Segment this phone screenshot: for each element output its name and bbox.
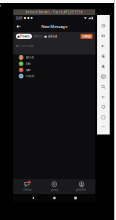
staticText: Android Emulator - Pixel_4_API_30:5554	[26, 10, 83, 14]
button[interactable]: posts	[41, 179, 68, 194]
staticText: within	[34, 35, 43, 38]
button[interactable]: Rotate right	[97, 61, 110, 71]
button[interactable]: GENESIS	[80, 34, 93, 39]
staticText: GENESIS	[82, 35, 91, 38]
staticText: New Message	[41, 24, 67, 29]
button[interactable]: Screenshot	[97, 71, 110, 82]
button[interactable]: Fold	[97, 102, 110, 112]
button[interactable]: Volume up	[97, 31, 110, 41]
staticText: dan	[26, 62, 31, 65]
button[interactable]: Rotate left	[97, 51, 110, 61]
button[interactable]: Back	[97, 92, 110, 102]
button[interactable]: Private	[16, 34, 32, 39]
button[interactable]: Settings	[97, 112, 110, 122]
staticText: profile	[77, 188, 87, 191]
staticText: achost	[26, 56, 34, 59]
staticText: inbox	[23, 188, 31, 191]
button[interactable]: Back	[32, 196, 35, 199]
button[interactable]: Home	[53, 197, 56, 199]
button[interactable]: Volume down	[97, 41, 110, 51]
staticText: To:	[16, 44, 20, 48]
staticText: username	[21, 44, 34, 48]
staticText: ryan	[26, 68, 31, 72]
staticText: cohost	[48, 35, 57, 38]
button[interactable]: cohost	[44, 35, 57, 38]
button[interactable]: Back	[15, 23, 22, 30]
button[interactable]: achost	[13, 54, 95, 61]
staticText: 3:01	[15, 15, 22, 21]
button[interactable]: Recent apps	[74, 197, 77, 199]
button[interactable]: inbox	[13, 179, 40, 194]
staticText: Private	[20, 35, 30, 38]
staticText: ×	[107, 16, 109, 19]
staticText: nicole	[26, 74, 35, 78]
button[interactable]: Zoom	[97, 82, 110, 92]
button[interactable]: nicole	[13, 73, 95, 79]
button[interactable]: More	[97, 122, 110, 130]
button[interactable]: dan	[13, 61, 95, 67]
button[interactable]: ryan	[13, 67, 95, 73]
button[interactable]: Power	[97, 20, 110, 31]
button[interactable]: profile	[68, 179, 95, 194]
staticText: posts	[51, 188, 58, 191]
